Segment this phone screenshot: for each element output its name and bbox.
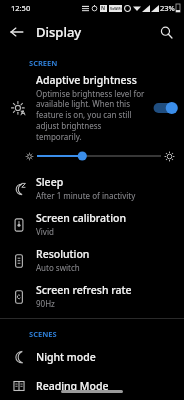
staticText: Sleep (36, 175, 64, 189)
staticText: Vivid (36, 226, 54, 237)
staticText: Screen refresh rate (36, 283, 132, 297)
button[interactable]: Adaptive brightness toggle (152, 100, 178, 116)
staticText: Night mode (36, 350, 96, 364)
staticText: Screen calibration (36, 211, 126, 225)
button[interactable]: Night mode (0, 341, 184, 372)
staticText: N (101, 5, 106, 12)
staticText: After 1 minute of inactivity (36, 190, 136, 201)
button[interactable]: Adaptive brightness (0, 70, 184, 146)
staticText: 90Hz (36, 298, 55, 309)
staticText: Optimise brightness level for available … (36, 88, 148, 143)
staticText: Adaptive brightness (36, 73, 137, 87)
staticText: Reading Mode (36, 379, 109, 393)
staticText: 23% (160, 3, 175, 13)
staticText: Resolution (36, 247, 90, 261)
button[interactable]: Screen refresh rate (0, 278, 184, 314)
staticText: 12:50 (11, 3, 31, 13)
staticText: Auto switch (36, 262, 80, 273)
button[interactable] (26, 146, 174, 166)
button[interactable]: Back (3, 18, 31, 46)
staticText: SCENES (29, 329, 57, 339)
button[interactable]: Resolution (0, 242, 184, 278)
staticText: VoWiFi (110, 6, 122, 11)
staticText: Display (36, 23, 82, 41)
button[interactable]: Sleep (0, 170, 184, 206)
button[interactable]: Screen calibration (0, 206, 184, 242)
staticText: SCREEN (29, 58, 58, 68)
button[interactable]: Reading Mode (0, 372, 184, 400)
button[interactable]: Search (153, 19, 179, 45)
